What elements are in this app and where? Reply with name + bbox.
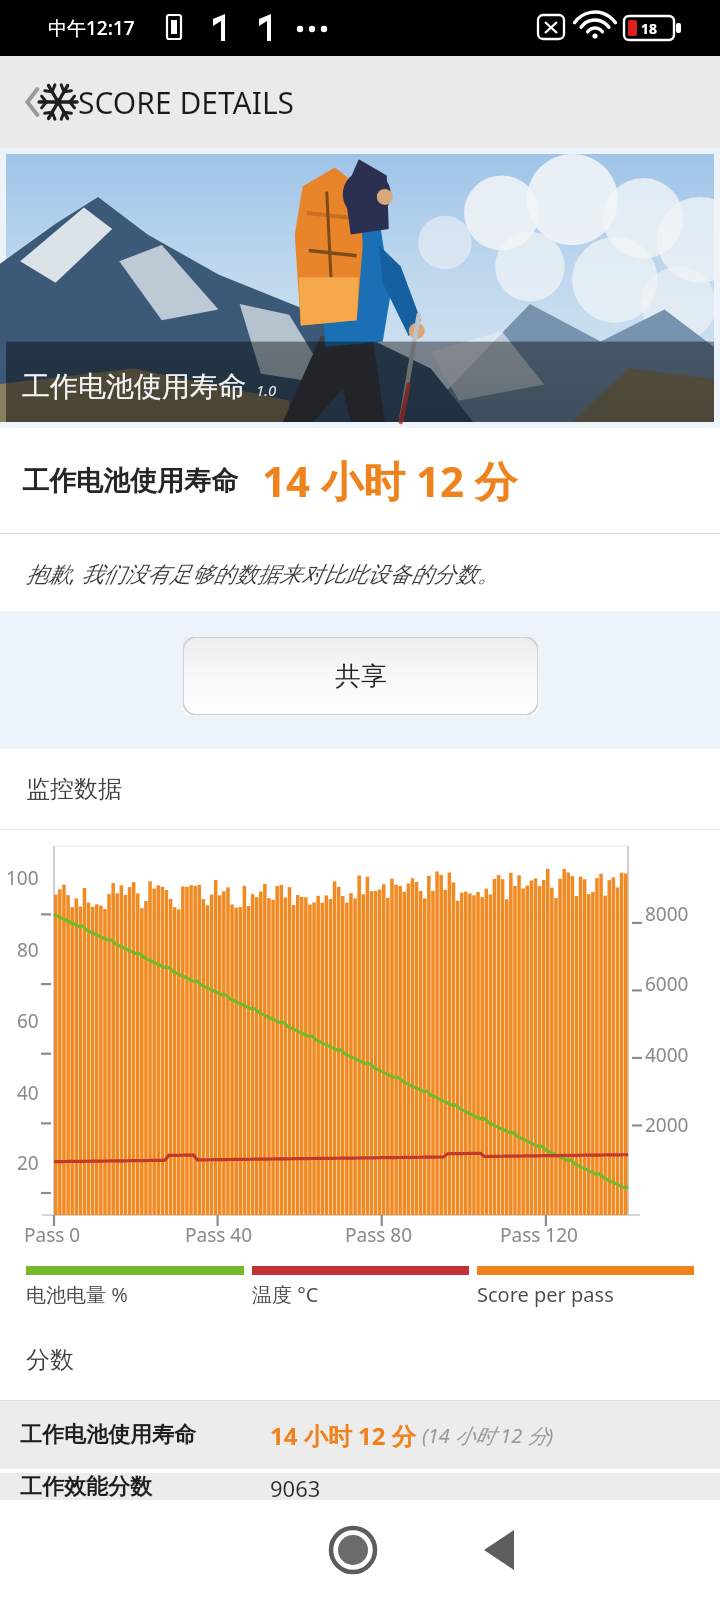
staticText: 100 [6, 865, 39, 891]
button[interactable]: 监控数据 [0, 749, 720, 829]
staticText: 1.0 [256, 380, 277, 400]
button[interactable]: Back [466, 1516, 534, 1584]
staticText: 共享 [335, 660, 387, 693]
staticText: 6000 [645, 971, 689, 997]
button[interactable]: 工作电池使用寿命 [0, 428, 720, 533]
staticText: 分数 [26, 1345, 74, 1375]
staticText: 14 小时 12 分 [262, 452, 517, 509]
staticText: Pass 80 [345, 1222, 413, 1248]
staticText: 18 [641, 19, 658, 38]
button[interactable]: 共享 [183, 637, 538, 715]
staticText: 9063 [270, 1473, 321, 1500]
staticText: 电池电量 % [26, 1281, 128, 1308]
staticText: 中午12:17 [48, 15, 135, 41]
staticText: 监控数据 [26, 774, 122, 804]
button[interactable]: Home [317, 1514, 389, 1586]
staticText: Pass 40 [185, 1222, 253, 1248]
staticText: 2000 [645, 1112, 689, 1138]
button[interactable]: 工作电池使用寿命 [0, 1401, 720, 1469]
button[interactable]: 工作电池使用寿命 [6, 154, 714, 422]
other: Back [14, 73, 72, 131]
button[interactable]: 分数 [0, 1320, 720, 1400]
staticText: 温度 °C [252, 1281, 319, 1308]
staticText: Pass 0 [24, 1222, 81, 1248]
staticText: 14 小时 12 分 [270, 1419, 416, 1452]
button[interactable]: 工作效能分数 [0, 1473, 720, 1500]
staticText: 工作电池使用寿命 [22, 369, 246, 404]
staticText: 工作效能分数 [20, 1473, 270, 1500]
staticText: 20 [17, 1150, 39, 1176]
staticText: 抱歉, 我们没有足够的数据来对比此设备的分数。 [26, 558, 500, 588]
button[interactable]: Back [0, 56, 720, 148]
staticText: 8000 [645, 901, 689, 927]
staticText: 工作电池使用寿命 [20, 1421, 270, 1449]
staticText: 40 [17, 1080, 39, 1106]
staticText: Pass 120 [500, 1222, 578, 1248]
staticText: SCORE DETAILS [78, 82, 295, 123]
staticText: 80 [17, 937, 39, 963]
staticText: 60 [17, 1008, 39, 1034]
staticText: (14 小时 12 分) [422, 1422, 554, 1449]
staticText: 工作电池使用寿命 [22, 464, 238, 498]
button[interactable]: 抱歉, 我们没有足够的数据来对比此设备的分数。 [0, 534, 720, 611]
staticText: 4000 [645, 1042, 689, 1068]
staticText: Score per pass [477, 1281, 614, 1308]
